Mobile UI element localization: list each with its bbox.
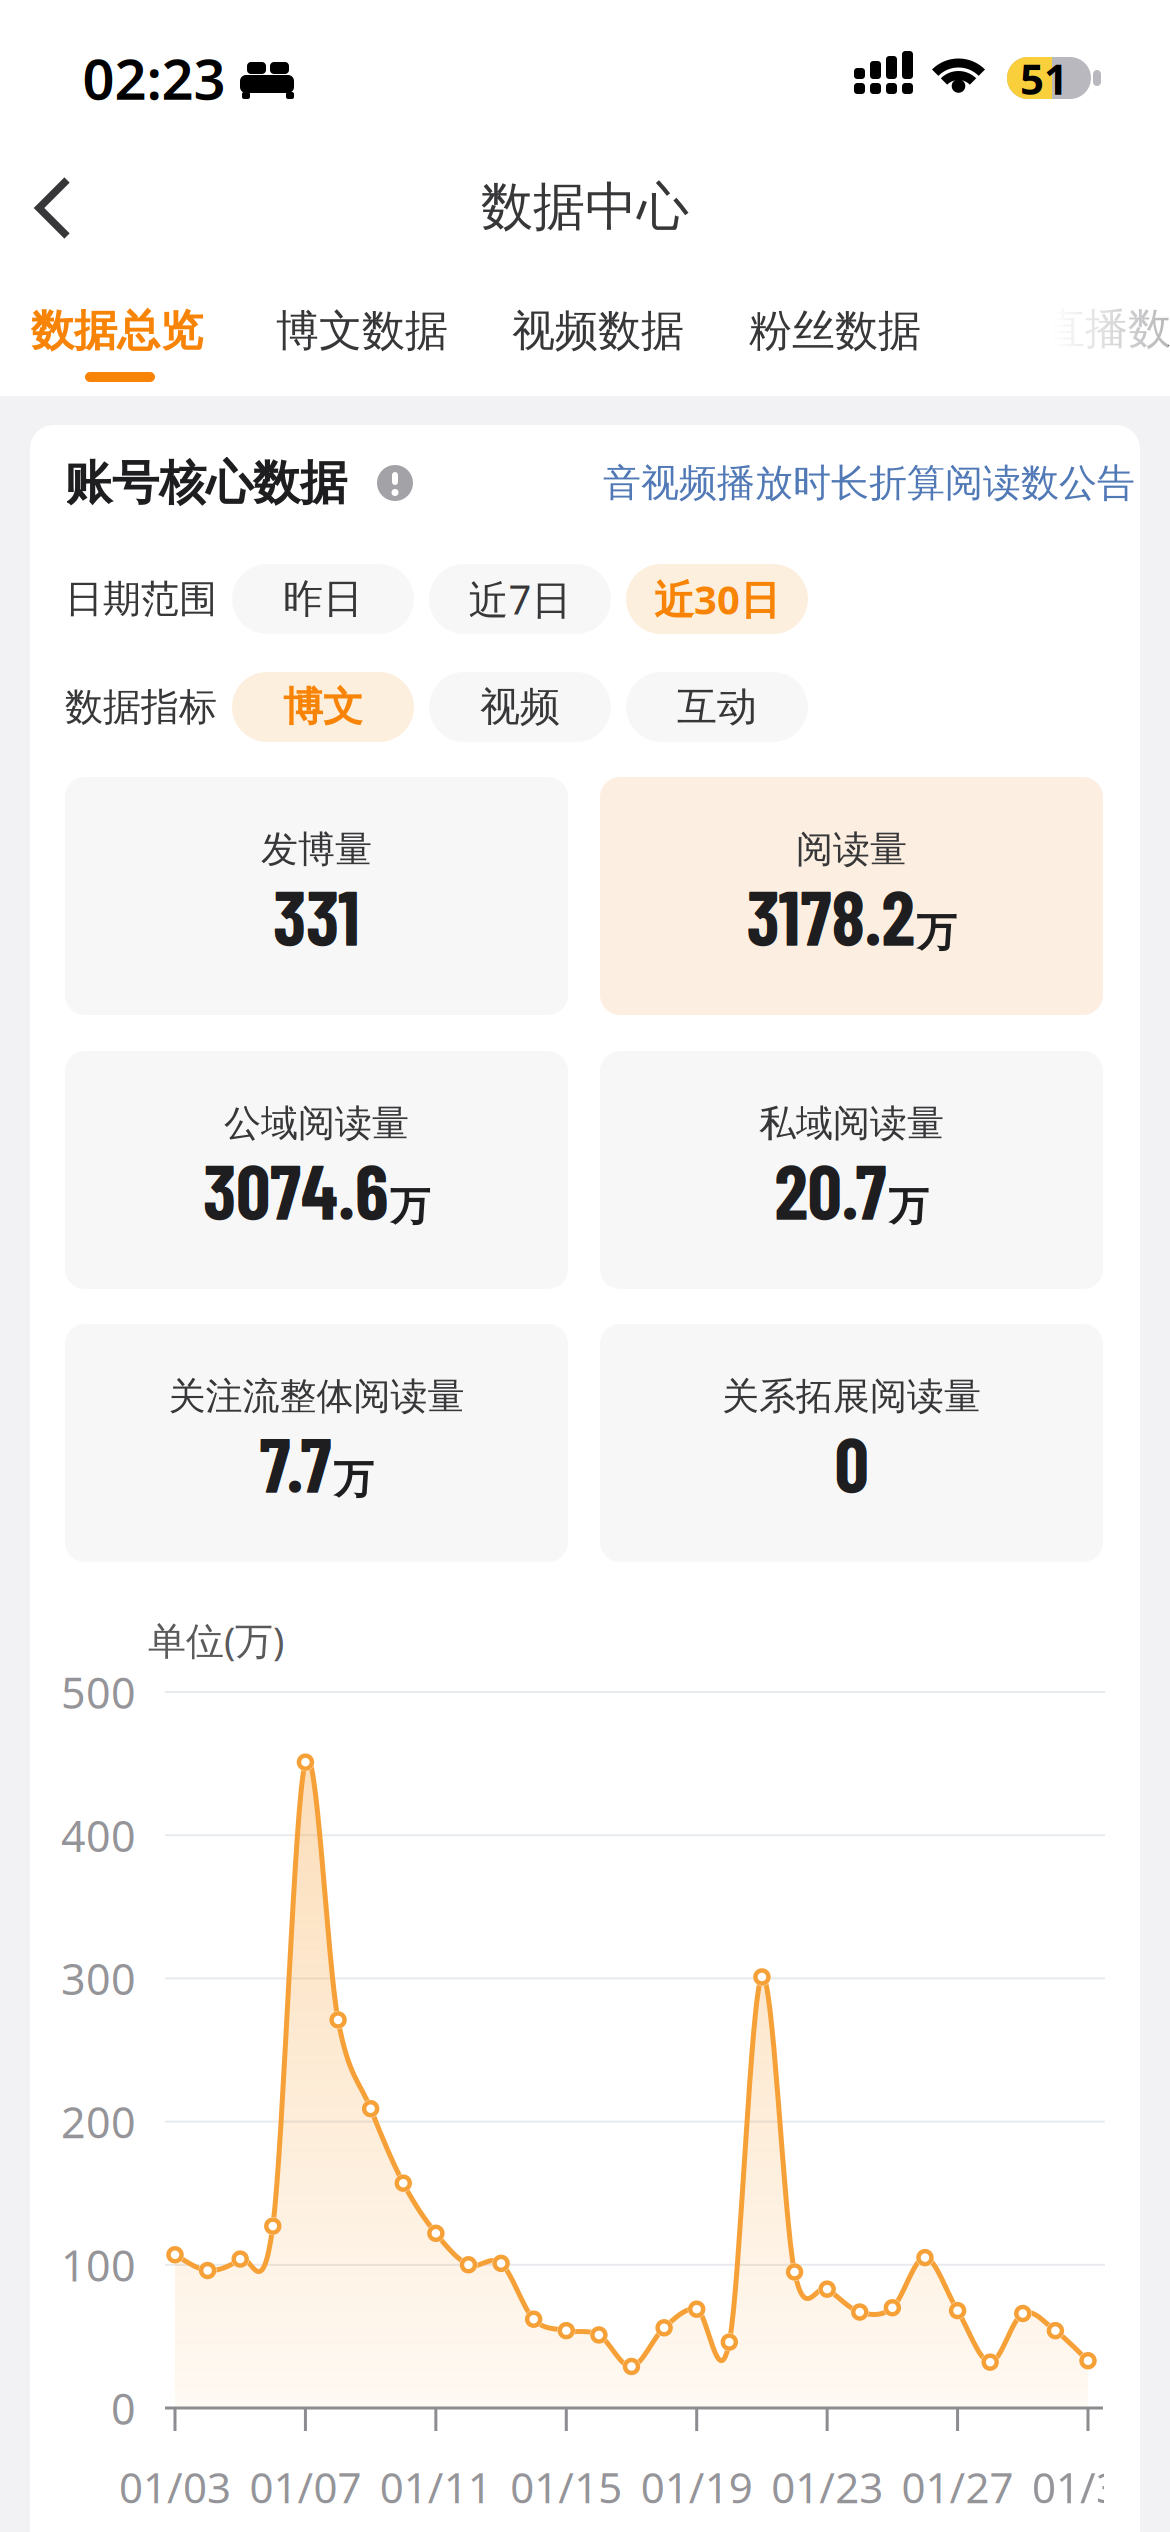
staticText: 万 — [333, 1454, 373, 1505]
staticText: 数据指标 — [65, 683, 217, 731]
staticText: 万 — [888, 1181, 928, 1232]
staticText: 200 — [61, 2092, 136, 2151]
button[interactable]: 博文 — [232, 672, 414, 742]
staticText: 01/15 — [510, 2458, 622, 2516]
staticText: 万 — [390, 1181, 430, 1232]
staticText: 400 — [61, 1806, 136, 1864]
staticText: 02:23 — [82, 40, 225, 116]
staticText: 公域阅读量 — [224, 1100, 409, 1147]
button[interactable]: 互动 — [626, 672, 808, 742]
button[interactable]: Back — [17, 170, 93, 246]
staticText: 500 — [61, 1663, 136, 1721]
staticText: 0 — [111, 2379, 136, 2437]
staticText: 账号核心数据 — [65, 453, 347, 513]
staticText: 粉丝数据 — [749, 304, 921, 358]
staticText: 3074.6 — [203, 1144, 388, 1235]
button[interactable]: 近7日 — [429, 564, 611, 634]
staticText: 视频数据 — [512, 304, 684, 358]
button[interactable]: 公域阅读量 — [65, 1051, 568, 1289]
staticText: 阅读量 — [796, 826, 907, 873]
staticText: 3178.2 — [746, 870, 914, 961]
button[interactable]: 视频 — [429, 672, 611, 742]
button[interactable]: 发博量 — [65, 777, 568, 1015]
button[interactable]: 私域阅读量 — [600, 1051, 1103, 1289]
staticText: 互动 — [677, 682, 757, 732]
staticText: 关注流整体阅读量 — [168, 1373, 464, 1420]
staticText: 01/23 — [771, 2458, 883, 2516]
staticText: 私域阅读量 — [759, 1100, 944, 1147]
staticText: 近7日 — [468, 572, 571, 626]
staticText: 日期范围 — [65, 575, 217, 623]
staticText: 音视频播放时长折算阅读数公告 — [603, 459, 1135, 507]
staticText: 331 — [273, 870, 360, 961]
staticText: 昨日 — [283, 574, 363, 624]
staticText: 数据总览 — [31, 304, 203, 358]
button[interactable]: 关注流整体阅读量 — [65, 1324, 568, 1562]
staticText: 近30日 — [654, 572, 780, 626]
staticText: 0 — [834, 1417, 868, 1508]
staticText: 博文 — [283, 682, 363, 732]
staticText: 数据中心 — [481, 174, 689, 240]
staticText: 01/31 — [1032, 2458, 1144, 2516]
staticText: 01/03 — [119, 2458, 231, 2516]
staticText: 01/19 — [641, 2458, 753, 2516]
button[interactable]: 博文数据 — [276, 304, 448, 358]
staticText: 100 — [61, 2235, 136, 2294]
button[interactable]: 视频数据 — [512, 304, 684, 358]
button[interactable]: 粉丝数据 — [749, 304, 921, 358]
staticText: 单位(万) — [148, 1614, 284, 1666]
button[interactable]: 关系拓展阅读量 — [600, 1324, 1103, 1562]
button[interactable]: 阅读量 — [600, 777, 1103, 1015]
staticText: 01/07 — [249, 2458, 361, 2516]
staticText: 20.7 — [774, 1144, 886, 1235]
button[interactable]: 昨日 — [232, 564, 414, 634]
staticText: 博文数据 — [276, 304, 448, 358]
staticText: 视频 — [480, 682, 560, 732]
staticText: 300 — [61, 1949, 136, 2008]
button[interactable]: 音视频播放时长折算阅读数公告 — [603, 459, 1135, 507]
staticText: 发博量 — [261, 826, 372, 873]
staticText: 关系拓展阅读量 — [722, 1373, 981, 1420]
button[interactable]: 近30日 — [626, 564, 808, 634]
button[interactable]: 数据说明 — [377, 465, 413, 501]
staticText: 01/11 — [380, 2458, 492, 2516]
staticText: 万 — [916, 907, 956, 958]
staticText: 直播数据 — [1042, 302, 1170, 356]
staticText: 01/27 — [902, 2458, 1014, 2516]
staticText: 7.7 — [259, 1417, 331, 1508]
button[interactable]: 数据总览 — [31, 304, 203, 358]
staticText: 51 — [1020, 50, 1068, 107]
